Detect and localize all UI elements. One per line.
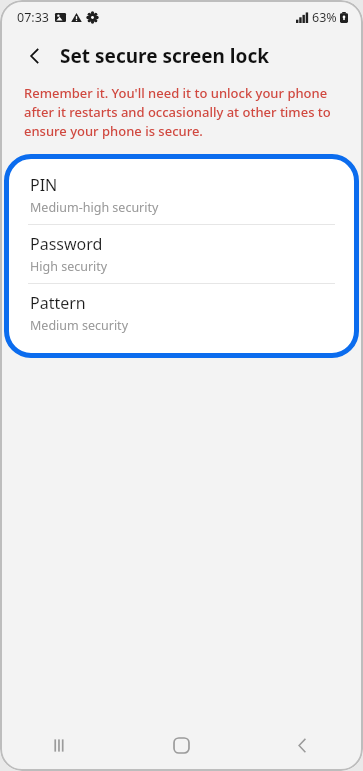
button[interactable]: Home	[121, 719, 242, 771]
staticText: 63%	[312, 9, 337, 26]
staticText: Set secure screen lock	[60, 43, 269, 69]
button[interactable]: Password	[8, 225, 355, 283]
button[interactable]: Back	[20, 41, 50, 71]
staticText: High security	[30, 258, 108, 275]
staticText: Password	[30, 233, 103, 255]
staticText: 07:33	[17, 9, 49, 26]
button[interactable]: Recent apps	[0, 719, 121, 771]
staticText: Medium-high security	[30, 199, 159, 216]
button[interactable]: Pattern	[8, 284, 355, 342]
button[interactable]: PIN	[8, 166, 355, 224]
staticText: Medium security	[30, 317, 129, 334]
button[interactable]: Back	[242, 719, 363, 771]
staticText: Remember it. You'll need it to unlock yo…	[24, 84, 345, 140]
staticText: PIN	[30, 174, 58, 196]
staticText: Pattern	[30, 292, 86, 314]
